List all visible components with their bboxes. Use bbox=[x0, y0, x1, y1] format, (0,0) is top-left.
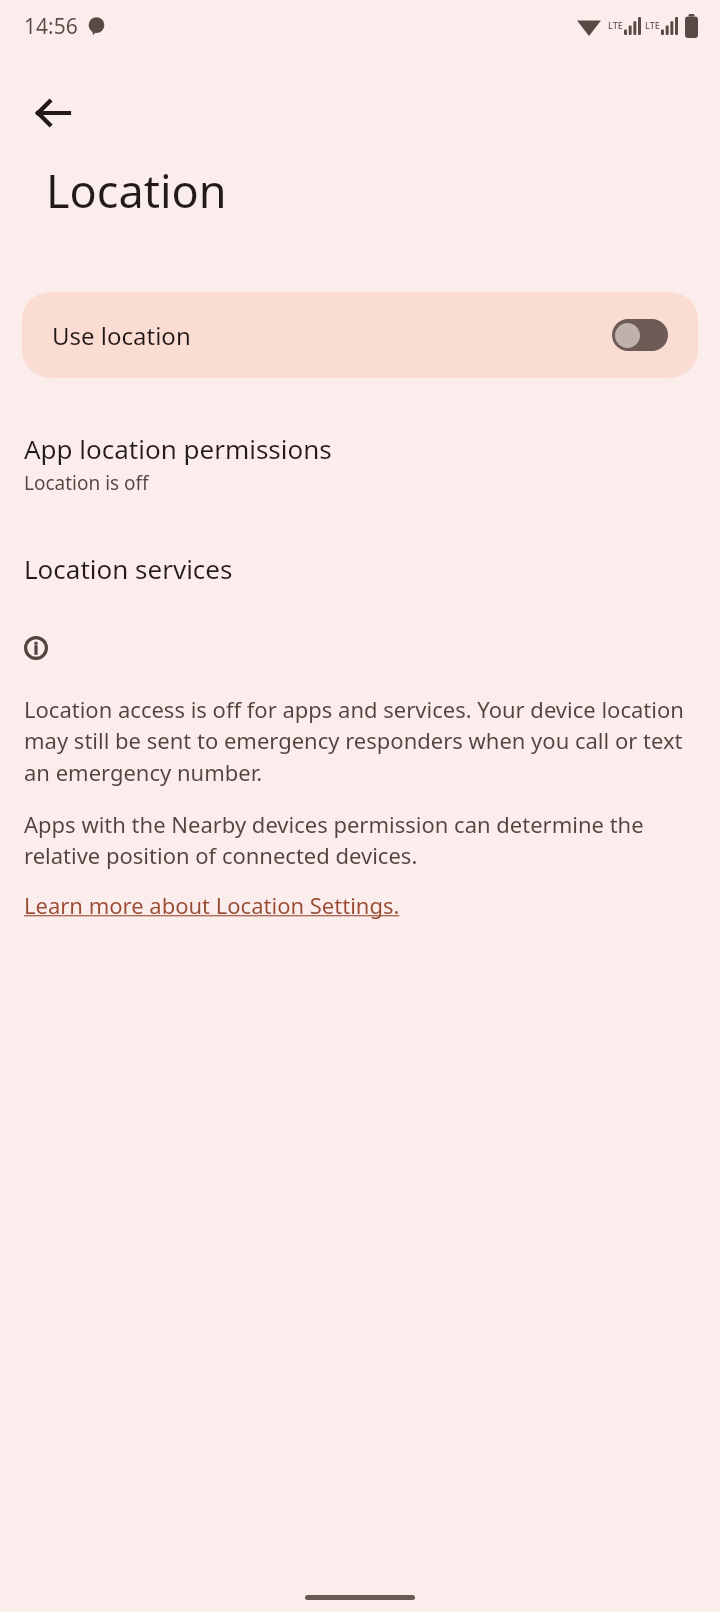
button[interactable]: Location services bbox=[0, 547, 720, 590]
staticText: Use location bbox=[52, 319, 612, 352]
staticText: Location is off bbox=[24, 470, 149, 496]
button[interactable]: Back bbox=[22, 82, 84, 144]
staticText: Location bbox=[46, 160, 227, 221]
button[interactable]: Learn more about Location Settings. bbox=[24, 890, 400, 920]
staticText: Location access is off for apps and serv… bbox=[24, 694, 696, 788]
staticText: 14:56 bbox=[24, 12, 78, 41]
button[interactable]: Use location bbox=[22, 292, 698, 378]
staticText: Apps with the Nearby devices permission … bbox=[24, 809, 696, 871]
button[interactable]: App location permissions bbox=[0, 427, 720, 500]
staticText: LTE bbox=[608, 19, 623, 31]
staticText: App location permissions bbox=[24, 431, 332, 466]
staticText: LTE bbox=[645, 19, 660, 31]
